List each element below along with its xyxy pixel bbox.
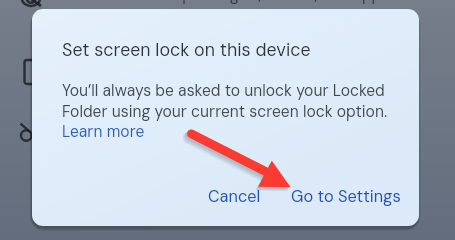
staticText: Learn more (62, 122, 145, 142)
button[interactable]: Learn more (62, 122, 145, 142)
staticText: Set screen lock on this device (62, 38, 311, 61)
button[interactable]: Cancel (192, 178, 277, 215)
staticText: Hide items from photo grid, search, and … (62, 0, 424, 5)
staticText: You’ll always be asked to unlock your Lo… (62, 81, 388, 122)
button[interactable]: Go to Settings (275, 178, 417, 215)
staticText: Cancel (208, 186, 261, 207)
other: Arrow pointing at Go to Settings (0, 0, 455, 240)
staticText: Go to Settings (291, 186, 401, 207)
